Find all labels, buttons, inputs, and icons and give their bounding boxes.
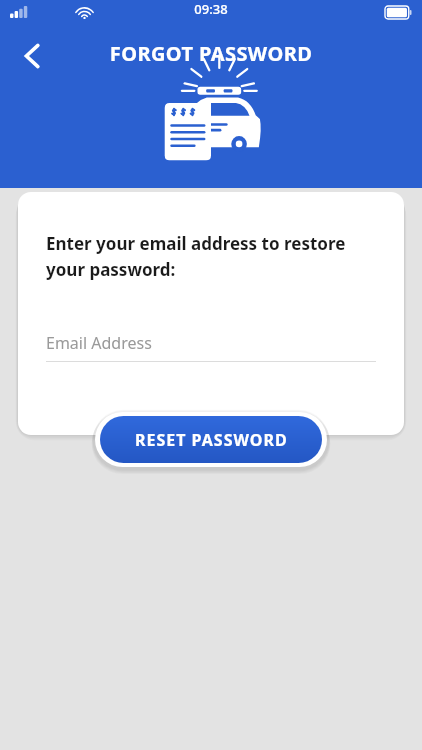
staticText: FORGOT PASSWORD: [0, 40, 422, 67]
button[interactable]: Email Address: [46, 325, 376, 361]
staticText: Email Address: [46, 332, 152, 354]
staticText: Enter your email address to restore your…: [46, 232, 376, 281]
button[interactable]: RESET PASSWORD: [100, 416, 322, 463]
staticText: 09:38: [0, 0, 422, 18]
button[interactable]: Back: [10, 34, 54, 78]
staticText: RESET PASSWORD: [135, 429, 288, 451]
